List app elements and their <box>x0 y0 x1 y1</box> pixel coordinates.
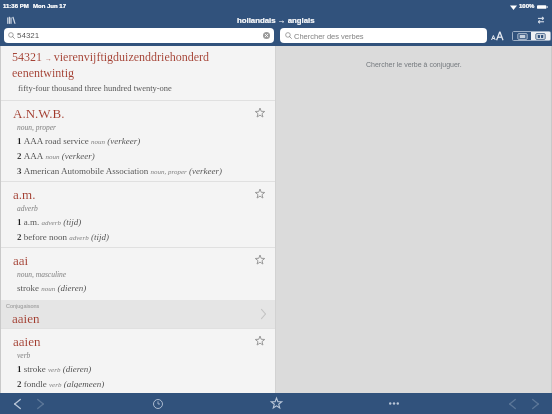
staticText: 2 fondle verb (algemeen) <box>17 379 105 388</box>
staticText: noun, proper <box>17 123 56 131</box>
button[interactable]: Favori <box>253 253 266 266</box>
staticText: 2 AAA noun (verkeer) <box>17 151 95 161</box>
staticText: Chercher le verbe à conjuguer. <box>366 61 462 69</box>
staticText: Mon Jun 17 <box>33 3 67 10</box>
button[interactable]: Historique <box>150 393 166 414</box>
button[interactable]: Favori <box>253 106 266 119</box>
staticText: verb <box>17 351 31 359</box>
staticText: Conjugaisons <box>6 303 40 309</box>
button[interactable]: Suivant <box>32 393 48 414</box>
button[interactable]: Page précédente <box>504 393 520 414</box>
staticText: 1 a.m. adverb (tijd) <box>17 217 82 227</box>
button[interactable]: Chercher des verbes <box>280 28 487 43</box>
button[interactable]: A.N.W.B. <box>0 101 276 181</box>
button[interactable]: aaien <box>0 329 276 393</box>
staticText: A.N.W.B. <box>13 106 65 120</box>
staticText: 3 American Automobile Association noun, … <box>17 166 222 176</box>
button[interactable]: Dictionnaires <box>4 12 19 27</box>
button[interactable]: Page suivante <box>527 393 543 414</box>
staticText: 11:36 PM <box>3 3 29 10</box>
button[interactable]: 54321 <box>4 28 274 43</box>
button[interactable]: Conjugaisons <box>0 300 276 328</box>
button[interactable]: Précédent <box>9 393 25 414</box>
button[interactable]: Favori <box>253 334 266 347</box>
staticText: adverb <box>17 204 38 212</box>
button[interactable]: aai <box>0 248 276 298</box>
button[interactable]: Vue simple <box>513 32 531 40</box>
button[interactable]: Favoris <box>268 393 284 414</box>
staticText: 1 AAA road service noun (verkeer) <box>17 136 141 146</box>
staticText: 54321 → vierenvijftigduizenddriehonderd … <box>12 50 268 79</box>
staticText: 54321 <box>17 31 40 40</box>
button[interactable]: Vue double <box>531 32 550 40</box>
button[interactable]: Plus <box>386 393 402 414</box>
staticText: 2 before noon adverb (tijd) <box>17 232 109 242</box>
staticText: 1 stroke verb (dieren) <box>17 364 92 374</box>
staticText: hollandais → anglais <box>237 16 315 25</box>
button[interactable]: Inverser les langues <box>533 12 548 27</box>
staticText: aaien <box>12 311 40 325</box>
button[interactable]: 54321 → vierenvijftigduizenddriehonderd … <box>0 46 276 100</box>
staticText: Chercher des verbes <box>294 32 364 40</box>
staticText: aaien <box>13 334 41 348</box>
staticText: a.m. <box>13 187 36 201</box>
button[interactable]: a.m. <box>0 182 276 247</box>
staticText: fifty-four thousand three hundred twenty… <box>18 83 172 92</box>
staticText: stroke noun (dieren) <box>17 283 87 293</box>
staticText: noun, masculine <box>17 270 67 278</box>
staticText: aai <box>13 253 29 267</box>
button[interactable]: Taille du texte <box>487 28 509 43</box>
button[interactable]: Favori <box>253 187 266 200</box>
staticText: 100% <box>519 3 535 10</box>
